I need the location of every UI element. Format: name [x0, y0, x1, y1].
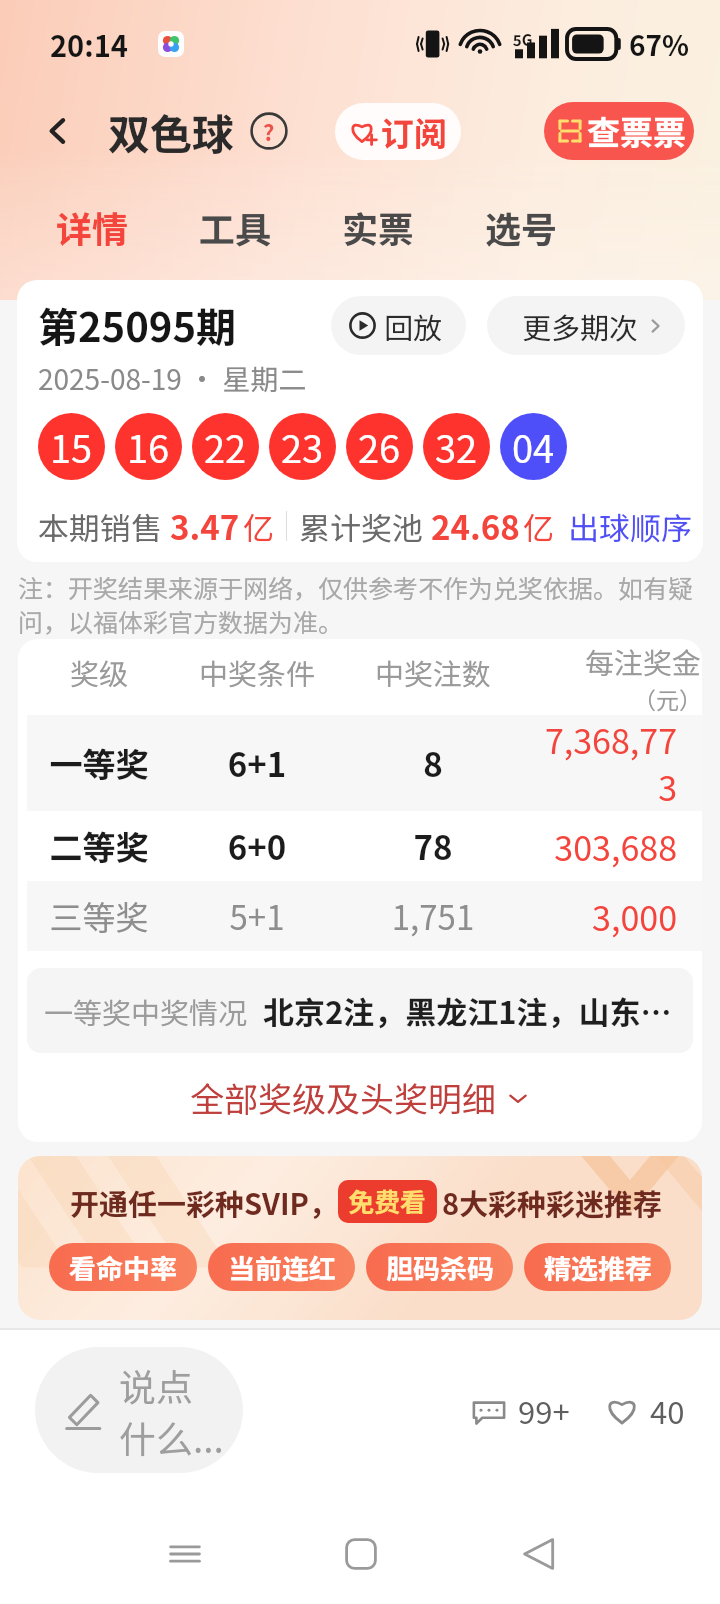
staticText: 注：开奖结果来源于网络，仅供参考不作为兑奖依据。如有疑问，以福体彩官方数据为准。: [18, 569, 714, 639]
staticText: 全部奖级及头奖明细: [190, 1073, 496, 1122]
staticText: 第25095期: [38, 296, 236, 354]
staticText: 99+: [518, 1388, 570, 1433]
button[interactable]: 三等奖: [27, 881, 702, 951]
staticText: 67%: [629, 24, 690, 65]
staticText: 奖级: [27, 651, 171, 693]
button[interactable]: 胆码杀码: [366, 1243, 513, 1291]
staticText: 5G: [513, 29, 533, 51]
staticText: 胆码杀码: [386, 1248, 494, 1287]
staticText: 24.68: [431, 502, 520, 550]
button[interactable]: Recent apps: [147, 1516, 223, 1592]
button[interactable]: 开通任一彩种SVIP，: [18, 1156, 702, 1320]
staticText: 每注奖金: [585, 640, 702, 682]
staticText: 亿: [523, 504, 554, 549]
staticText: 实票: [342, 201, 415, 253]
staticText: 一等奖中奖情况: [44, 990, 248, 1032]
button[interactable]: Home: [323, 1516, 399, 1592]
staticText: 20:14: [50, 23, 128, 65]
staticText: 累计奖池: [299, 504, 423, 549]
staticText: 8: [343, 739, 523, 787]
staticText: 免费看: [348, 1182, 427, 1220]
button[interactable]: 工具: [199, 174, 342, 280]
staticText: 6+0: [171, 822, 343, 870]
staticText: 工具: [199, 201, 272, 253]
button[interactable]: 当前连红: [208, 1243, 355, 1291]
staticText: 详情: [56, 201, 129, 253]
staticText: 303,688: [523, 822, 677, 871]
button[interactable]: Back: [36, 109, 80, 153]
staticText: 7,368,77 3: [523, 715, 677, 811]
staticText: 04: [512, 419, 555, 474]
button[interactable]: 查票票: [544, 102, 694, 160]
button[interactable]: 详情: [56, 174, 199, 280]
staticText: 亿: [243, 504, 274, 549]
staticText: 16: [127, 419, 170, 474]
button[interactable]: Help: [249, 111, 289, 151]
staticText: 26: [358, 419, 401, 474]
staticText: 3.47: [170, 502, 240, 550]
button[interactable]: 看命中率: [49, 1243, 197, 1291]
button[interactable]: 一等奖中奖情况: [27, 968, 693, 1053]
staticText: 78: [343, 822, 523, 870]
staticText: 5+1: [171, 892, 343, 940]
button[interactable]: 99+: [468, 1388, 570, 1433]
staticText: 一等奖: [27, 739, 171, 787]
staticText: 15: [50, 419, 93, 474]
staticText: 回放: [384, 305, 443, 347]
staticText: 出球顺序: [568, 504, 692, 549]
staticText: 订阅: [381, 108, 447, 156]
staticText: 双色球: [108, 101, 235, 162]
staticText: 开通任一彩种SVIP，: [70, 1181, 338, 1223]
button[interactable]: 一等奖: [27, 715, 702, 811]
button[interactable]: 选号: [485, 174, 628, 280]
staticText: 1,751: [343, 892, 523, 940]
staticText: 2025-08-19 · 星期二: [38, 358, 307, 399]
staticText: 中奖条件: [171, 651, 343, 693]
staticText: 二等奖: [27, 822, 171, 870]
staticText: 6+1: [171, 739, 343, 787]
staticText: 精选推荐: [544, 1248, 652, 1287]
button[interactable]: Back: [501, 1516, 577, 1592]
staticText: 本期销售: [38, 504, 162, 549]
staticText: 22: [204, 419, 247, 474]
staticText: ?: [263, 115, 275, 147]
staticText: 40: [650, 1388, 685, 1433]
staticText: 更多期次: [522, 305, 639, 347]
staticText: 选号: [485, 201, 558, 253]
staticText: 当前连红: [228, 1248, 336, 1287]
staticText: 3,000: [523, 892, 677, 941]
button[interactable]: 出球顺序: [568, 504, 692, 549]
button[interactable]: 订阅: [335, 103, 461, 160]
staticText: 三等奖: [27, 892, 171, 940]
button[interactable]: 全部奖级及头奖明细: [18, 1053, 702, 1142]
staticText: 中奖注数: [343, 651, 523, 693]
staticText: 看命中率: [69, 1248, 177, 1287]
staticText: 北京2注，黑龙江1注，山东…: [263, 988, 672, 1033]
button[interactable]: 说点 什么...: [35, 1347, 243, 1473]
staticText: 8大彩种彩迷推荐: [442, 1181, 663, 1223]
button[interactable]: 二等奖: [27, 811, 702, 881]
staticText: 说点 什么...: [119, 1358, 224, 1463]
button[interactable]: 40: [602, 1388, 685, 1433]
staticText: 32: [435, 419, 478, 474]
staticText: 23: [281, 419, 324, 474]
button[interactable]: 精选推荐: [524, 1243, 671, 1291]
staticText: 查票票: [587, 107, 686, 155]
button[interactable]: 更多期次: [487, 296, 685, 355]
button[interactable]: 实票: [342, 174, 485, 280]
staticText: （元）: [633, 682, 702, 715]
button[interactable]: 回放: [331, 296, 466, 355]
